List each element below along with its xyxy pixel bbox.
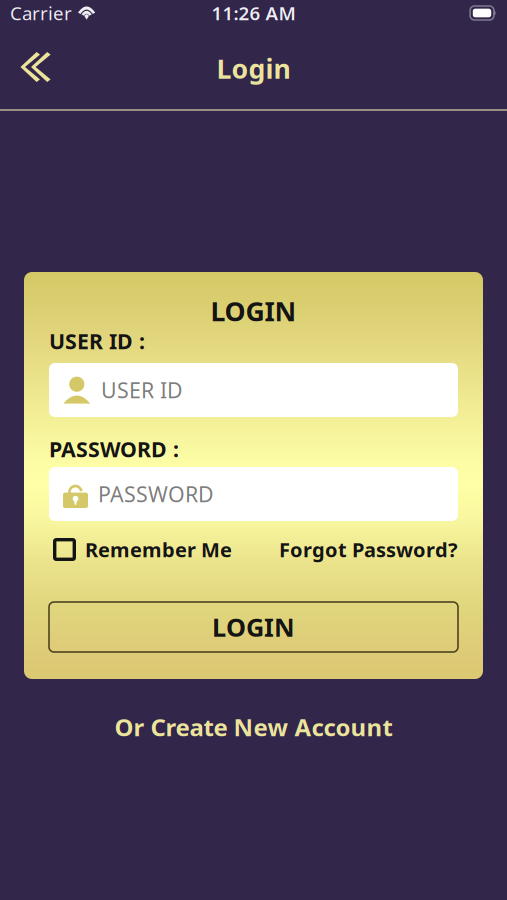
staticText: Login — [216, 51, 290, 86]
button[interactable]: USER ID — [49, 363, 458, 417]
button[interactable]: LOGIN — [49, 602, 458, 652]
staticText: Carrier — [10, 1, 72, 25]
staticText: USER ID : — [49, 327, 145, 355]
button[interactable]: Back — [0, 34, 64, 101]
staticText: 11:26 AM — [211, 1, 295, 25]
staticText: Or Create New Account — [114, 711, 392, 743]
staticText: PASSWORD : — [49, 435, 179, 463]
staticText: LOGIN — [212, 610, 295, 644]
button[interactable]: Remember Me — [49, 536, 232, 563]
staticText: LOGIN — [210, 293, 296, 329]
button[interactable]: PASSWORD — [49, 467, 458, 521]
staticText: PASSWORD — [98, 480, 214, 508]
staticText: Forgot Password? — [279, 536, 458, 563]
button[interactable]: Or Create New Account — [94, 701, 412, 753]
staticText: USER ID — [101, 376, 183, 404]
button[interactable]: Forgot Password? — [279, 536, 458, 563]
staticText: Remember Me — [85, 536, 232, 563]
